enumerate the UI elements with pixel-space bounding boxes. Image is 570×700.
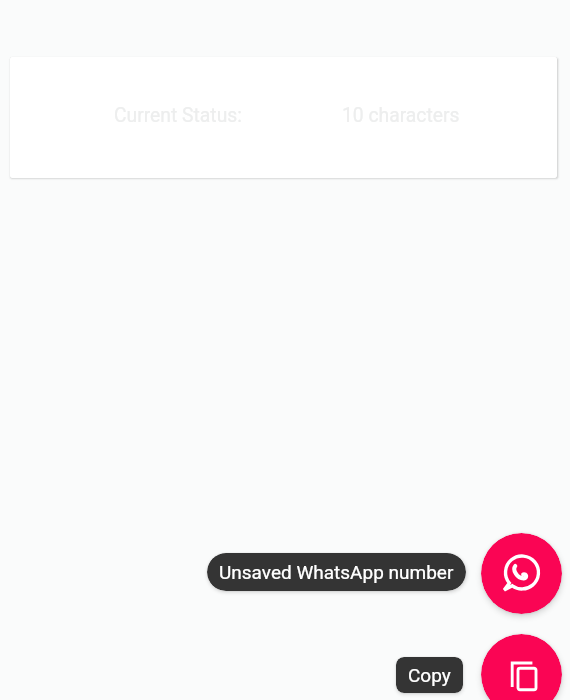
button[interactable]: Copy bbox=[396, 657, 463, 693]
button[interactable]: Message on WhatsApp bbox=[481, 533, 562, 614]
staticText: 10 characters bbox=[342, 104, 460, 127]
button[interactable]: Copy bbox=[481, 634, 562, 700]
staticText: Copy bbox=[408, 664, 451, 686]
staticText: Current Status: bbox=[114, 104, 242, 127]
button[interactable]: Unsaved WhatsApp number bbox=[207, 553, 466, 591]
staticText: Unsaved WhatsApp number bbox=[219, 561, 454, 583]
